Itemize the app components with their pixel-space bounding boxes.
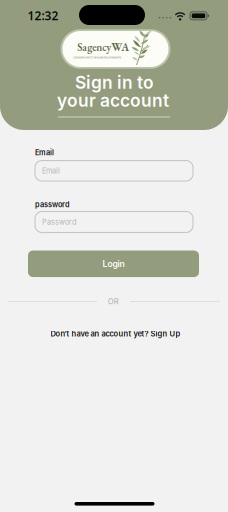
staticText: Sagency bbox=[77, 40, 111, 54]
button[interactable]: Don’t have an account yet? Sign Up bbox=[50, 329, 180, 338]
staticText: password bbox=[35, 200, 70, 209]
staticText: Email bbox=[35, 148, 54, 157]
staticText: 12:32 bbox=[27, 7, 58, 23]
button[interactable]: Password bbox=[35, 211, 193, 232]
staticText: OR bbox=[108, 297, 119, 306]
staticText: your account bbox=[57, 90, 169, 111]
staticText: Sign in to bbox=[75, 72, 154, 93]
button[interactable]: Login bbox=[28, 251, 199, 277]
staticText: WA bbox=[111, 40, 129, 54]
staticText: Password bbox=[42, 218, 76, 226]
button[interactable]: Email bbox=[35, 161, 193, 181]
staticText: CHOOSING SAFETY HEALING RELATIONSHIPS bbox=[0, 52, 202, 63]
staticText: Login bbox=[102, 259, 124, 269]
staticText: Email bbox=[42, 166, 60, 175]
staticText: Don’t have an account yet? Sign Up bbox=[50, 329, 180, 338]
